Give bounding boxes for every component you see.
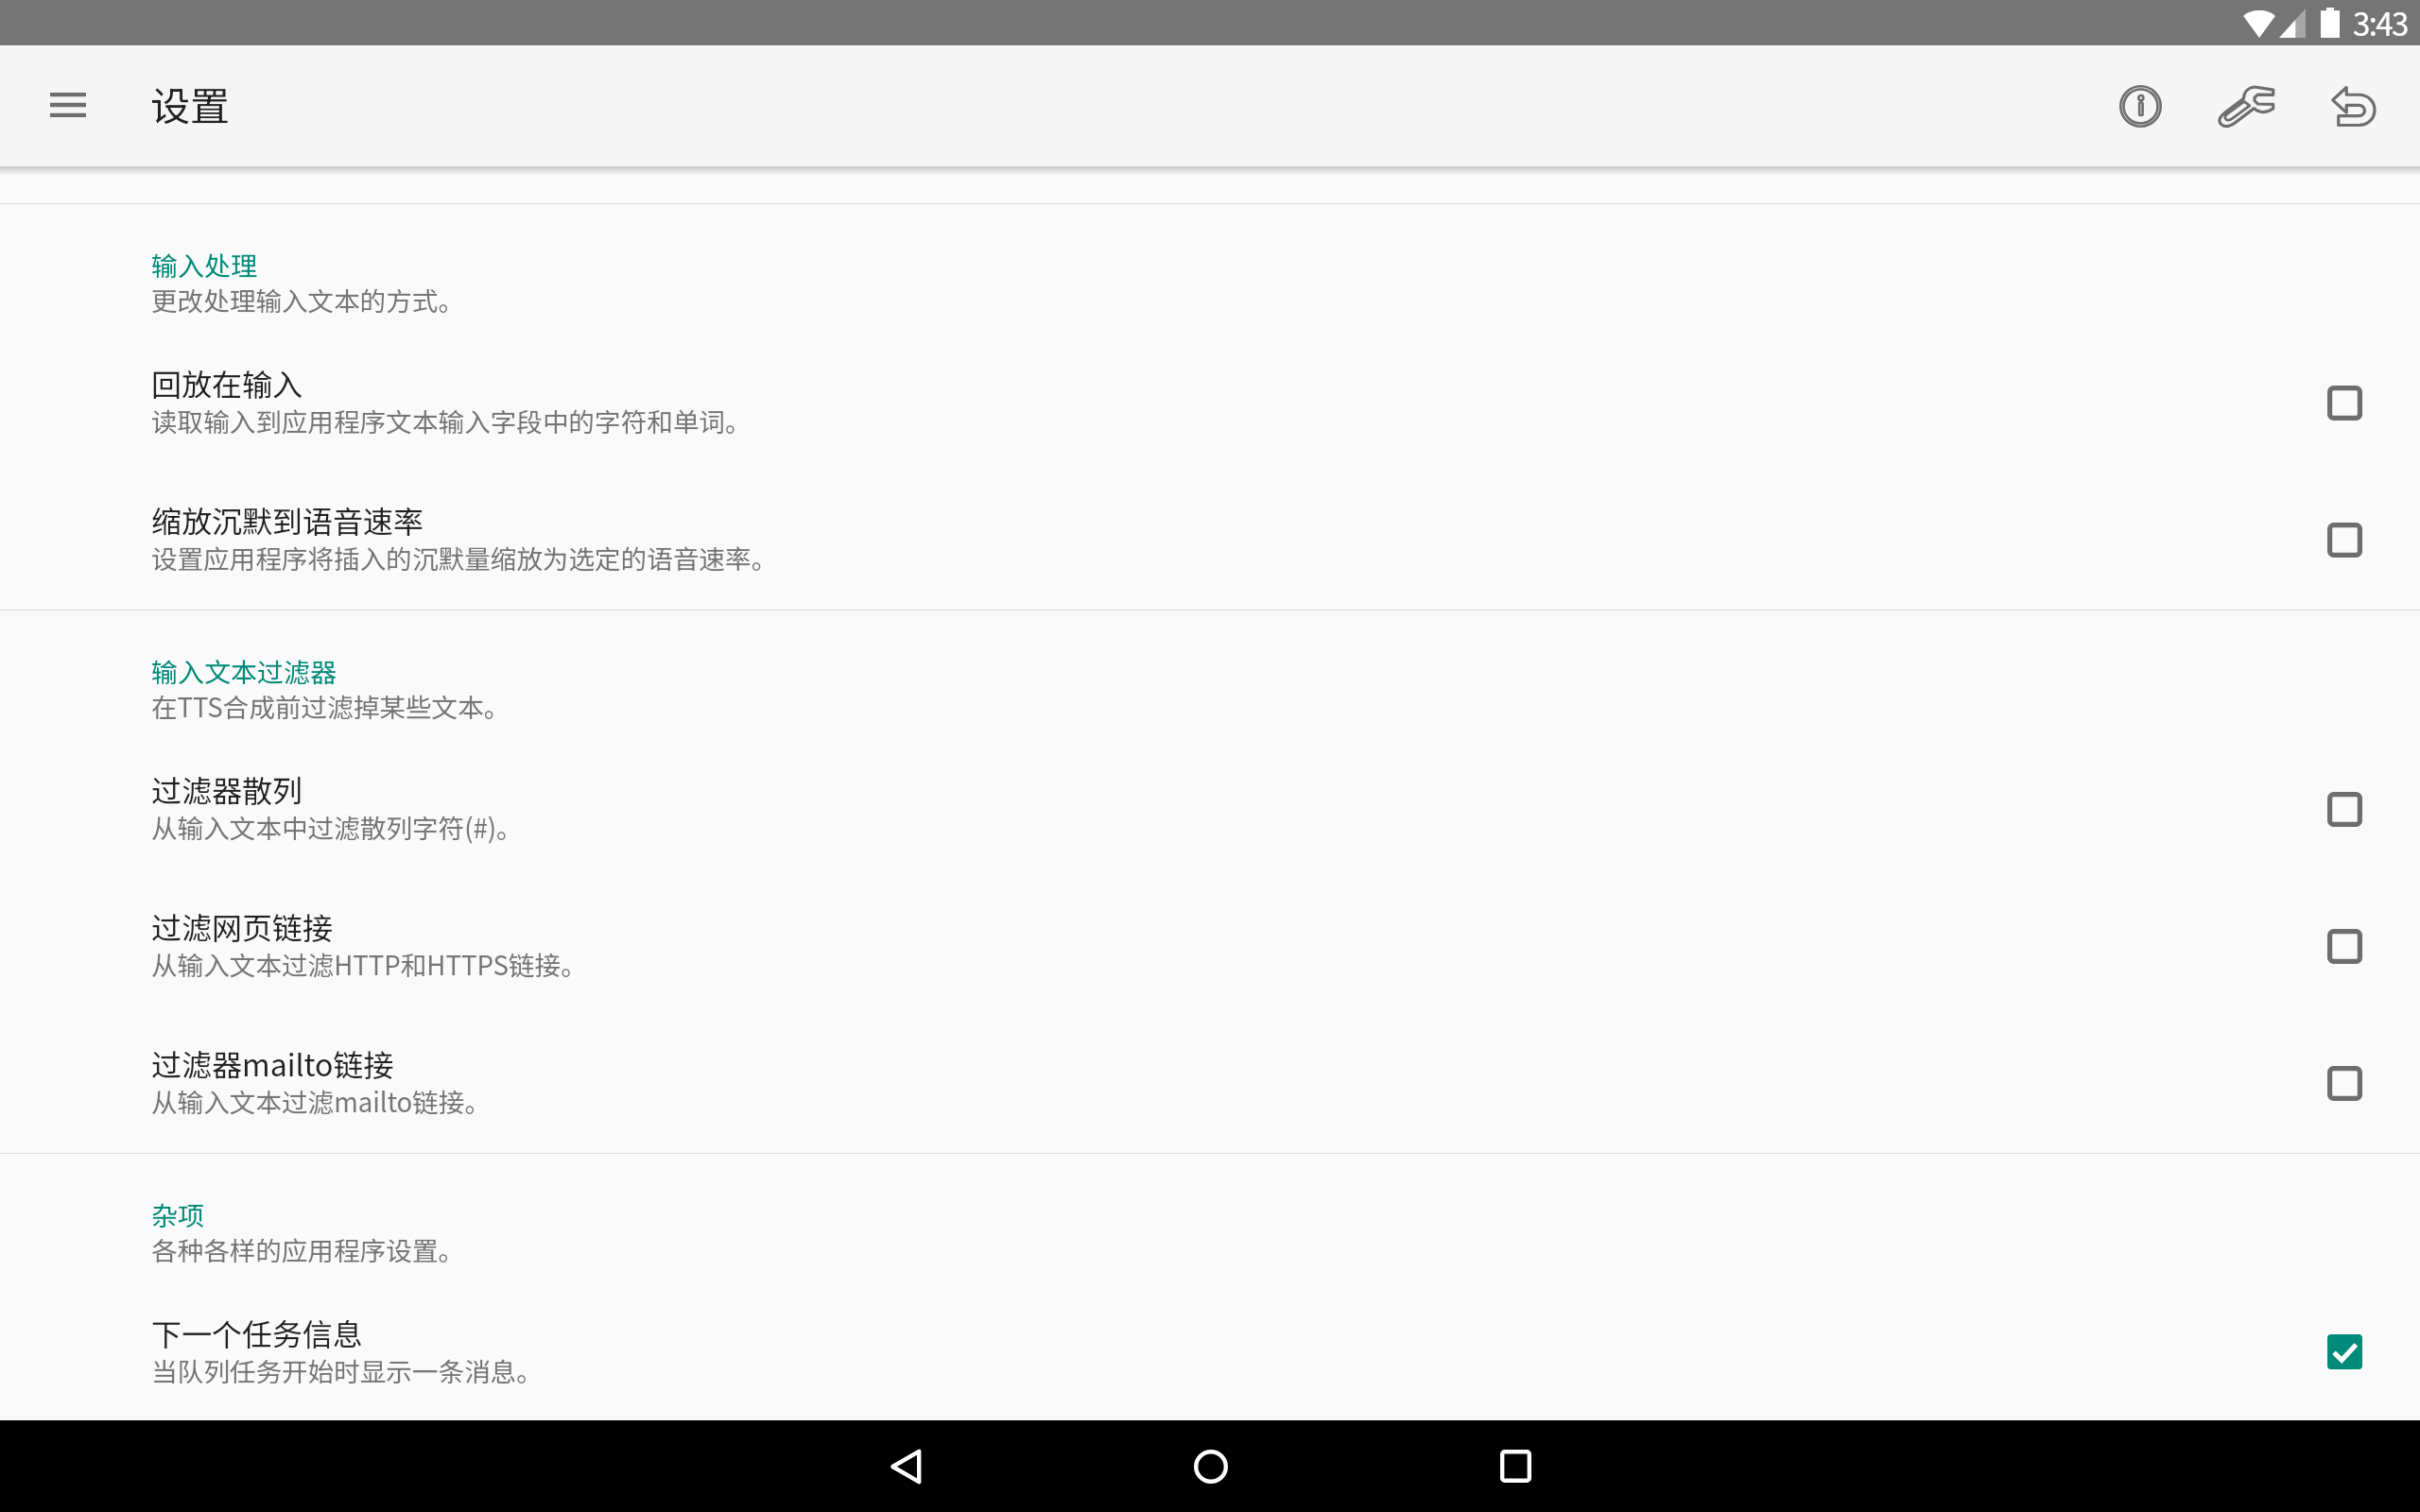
- staticText: 在TTS合成前过滤掉某些文本。: [151, 689, 510, 725]
- button[interactable]: 缩放沉默到语音速率: [0, 472, 2420, 610]
- button[interactable]: 下一个任务信息: [0, 1285, 2420, 1420]
- staticText: 从输入文本中过滤散列字符(#)。: [151, 810, 523, 846]
- staticText: 缩放沉默到语音速率: [151, 502, 424, 541]
- button[interactable]: 回放在输入: [0, 335, 2420, 472]
- button[interactable]: 过滤器mailto链接: [0, 1016, 2420, 1153]
- staticText: 更改处理输入文本的方式。: [151, 283, 465, 318]
- staticText: 输入处理: [151, 248, 258, 283]
- staticText: 各种各样的应用程序设置。: [151, 1232, 465, 1268]
- button[interactable]: Back: [752, 1420, 1058, 1512]
- staticText: 回放在输入: [151, 365, 303, 404]
- staticText: 从输入文本过滤mailto链接。: [151, 1084, 492, 1120]
- staticText: 过滤网页链接: [151, 908, 334, 947]
- staticText: 杂项: [151, 1197, 205, 1232]
- staticText: 从输入文本过滤HTTP和HTTPS链接。: [151, 947, 587, 983]
- staticText: 3:43: [2353, 9, 2408, 43]
- button[interactable]: 过滤器散列: [0, 742, 2420, 879]
- button[interactable]: Tools: [2197, 57, 2295, 155]
- staticText: 输入文本过滤器: [151, 654, 337, 689]
- button[interactable]: Information: [2091, 57, 2189, 155]
- button[interactable]: 过滤网页链接: [0, 879, 2420, 1016]
- staticText: 下一个任务信息: [151, 1314, 364, 1353]
- staticText: 读取输入到应用程序文本输入字段中的字符和单词。: [151, 404, 752, 439]
- staticText: 当队列任务开始时显示一条消息。: [151, 1353, 543, 1387]
- staticText: 设置: [150, 86, 231, 129]
- button[interactable]: Open navigation drawer: [19, 56, 117, 154]
- button[interactable]: Undo: [2304, 57, 2402, 155]
- button[interactable]: Home: [1058, 1420, 1363, 1512]
- staticText: 设置应用程序将插入的沉默量缩放为选定的语音速率。: [151, 541, 778, 576]
- staticText: 过滤器mailto链接: [151, 1045, 394, 1084]
- staticText: 过滤器散列: [151, 771, 303, 810]
- button[interactable]: Recent apps: [1363, 1420, 1668, 1512]
